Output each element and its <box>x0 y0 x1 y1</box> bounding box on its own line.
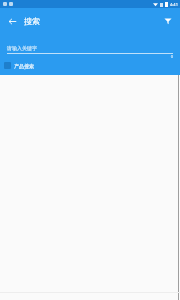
button[interactable]: 请输入关键字 <box>7 45 173 59</box>
staticText: 请输入关键字 <box>7 45 37 51</box>
staticText: 4:41 <box>170 2 178 7</box>
button[interactable]: Back <box>3 12 21 30</box>
button[interactable]: 产品搜索 <box>4 62 34 69</box>
staticText: 产品搜索 <box>14 63 34 69</box>
staticText: 搜索 <box>24 16 40 26</box>
staticText: 0 <box>170 54 173 59</box>
button[interactable]: Filter <box>159 12 177 30</box>
